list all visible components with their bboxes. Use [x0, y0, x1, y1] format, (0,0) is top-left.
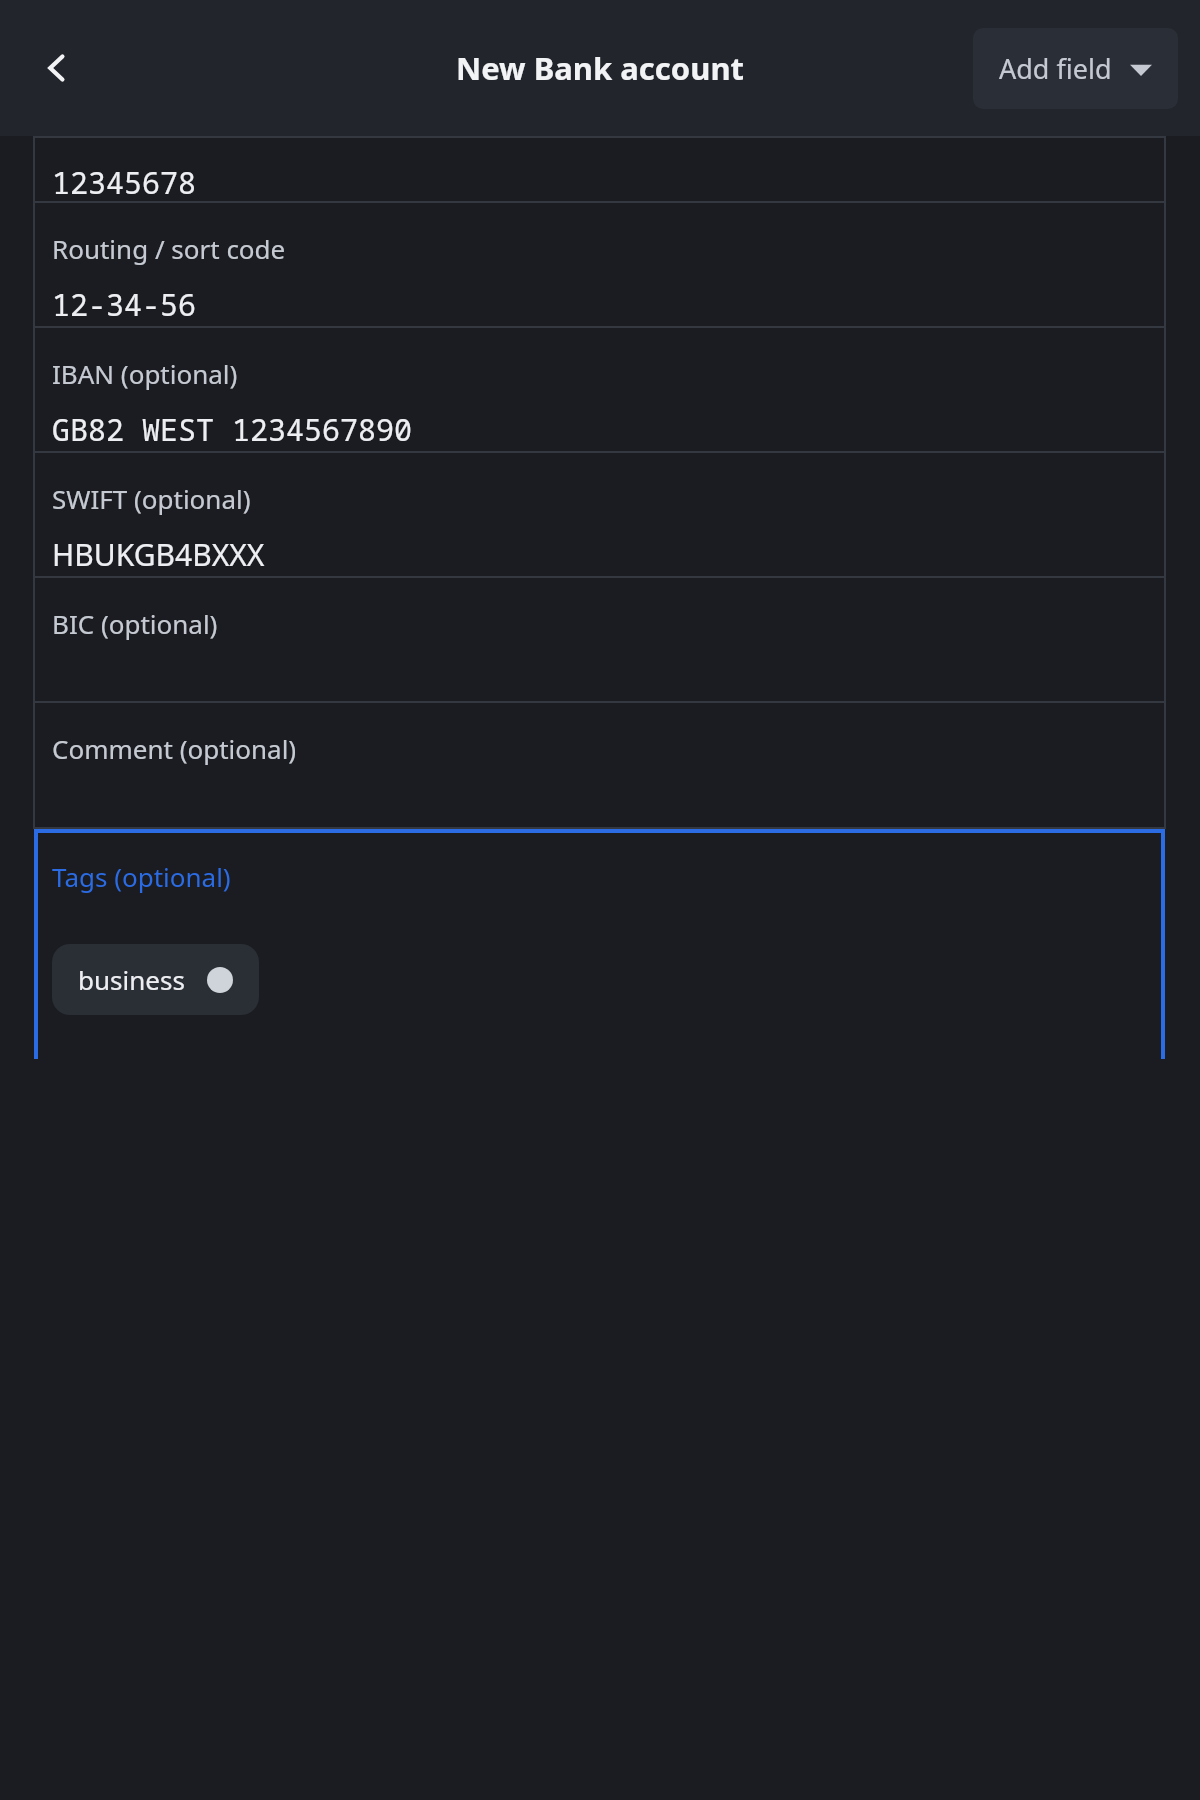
staticText: SWIFT (optional): [52, 481, 251, 516]
staticText: IBAN (optional): [52, 356, 238, 391]
staticText: Routing / sort code: [52, 231, 286, 266]
staticText: Tags (optional): [52, 859, 231, 894]
button[interactable]: Routing / sort code: [0, 203, 1200, 328]
staticText: 12345678: [52, 162, 196, 203]
button[interactable]: business: [52, 944, 259, 1015]
staticText: Comment (optional): [52, 731, 297, 766]
button[interactable]: Back: [22, 33, 92, 103]
button[interactable]: Comment (optional): [0, 703, 1200, 829]
button[interactable]: IBAN (optional): [0, 328, 1200, 453]
staticText: 12-34-56: [52, 284, 196, 325]
button[interactable]: Add field: [973, 28, 1178, 109]
button[interactable]: 12345678: [0, 136, 1200, 203]
staticText: HBUKGB4BXXX: [52, 534, 265, 575]
staticText: business: [78, 962, 185, 997]
staticText: New Bank account: [456, 47, 744, 89]
staticText: BIC (optional): [52, 606, 218, 641]
staticText: GB82 WEST 1234567890: [52, 409, 412, 450]
button[interactable]: BIC (optional): [0, 578, 1200, 703]
staticText: Add field: [999, 50, 1112, 87]
button[interactable]: Tags (optional): [52, 829, 1200, 1059]
button[interactable]: SWIFT (optional): [0, 453, 1200, 578]
